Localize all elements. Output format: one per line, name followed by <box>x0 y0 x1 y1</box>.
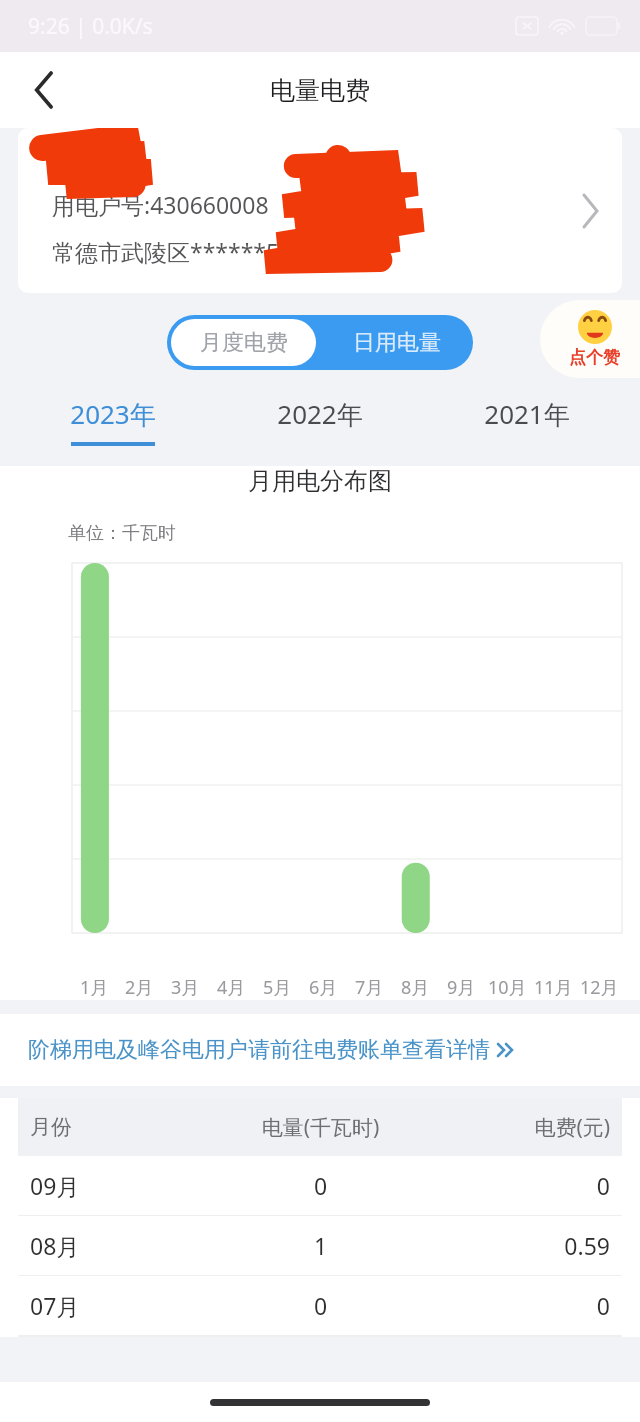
staticText: 08月 <box>30 1230 220 1261</box>
staticText: 2021年 <box>484 396 570 432</box>
staticText: 常德市武陵区******5组 <box>52 236 303 267</box>
button[interactable]: 阶梯用电及峰谷电用户请前往电费账单查看详情 <box>0 1014 640 1086</box>
staticText: 单位：千瓦时 <box>68 522 176 545</box>
staticText: 0 <box>421 1170 610 1201</box>
staticText: 12月 <box>580 975 619 1000</box>
button[interactable]: 月度电费 <box>171 319 316 366</box>
staticText: 10月 <box>488 975 527 1000</box>
button[interactable]: 点个赞 <box>540 300 640 378</box>
staticText: 1月 <box>80 975 109 1000</box>
staticText: 0.59 <box>421 1230 610 1261</box>
staticText: 8月 <box>401 975 430 1000</box>
staticText: 7月 <box>355 975 384 1000</box>
button[interactable]: 2021年 <box>423 392 630 450</box>
staticText: 电量(千瓦时) <box>220 1113 421 1142</box>
staticText: 2022年 <box>277 396 363 432</box>
staticText: 月份 <box>30 1114 220 1140</box>
staticText: 07月 <box>30 1290 220 1321</box>
staticText: 点个赞 <box>569 347 620 368</box>
button[interactable]: 2022年 <box>216 392 423 450</box>
staticText: 3月 <box>171 975 200 1000</box>
staticText: 5月 <box>263 975 292 1000</box>
staticText: 日用电量 <box>353 329 441 357</box>
button[interactable]: 09月 <box>0 1156 640 1216</box>
staticText: 0 <box>220 1170 421 1201</box>
staticText: 2月 <box>125 975 154 1000</box>
button[interactable]: 2023年 <box>10 392 216 450</box>
staticText: 阶梯用电及峰谷电用户请前往电费账单查看详情 <box>28 1036 490 1064</box>
staticText: 09月 <box>30 1170 220 1201</box>
staticText: 1 <box>220 1230 421 1261</box>
staticText: 月用电分布图 <box>248 466 392 496</box>
staticText: 4月 <box>217 975 246 1000</box>
button[interactable]: Back <box>14 59 76 121</box>
staticText: 月度电费 <box>200 329 288 357</box>
staticText: 6月 <box>309 975 338 1000</box>
staticText: 电量电费 <box>270 75 370 106</box>
staticText: 0 <box>421 1290 610 1321</box>
button[interactable]: 日用电量 <box>320 315 473 370</box>
button[interactable]: 08月 <box>0 1216 640 1276</box>
staticText: 9月 <box>447 975 476 1000</box>
staticText: 用电户号:430660008 <box>52 189 269 220</box>
staticText: 9:26 | 0.0K/s <box>28 12 153 41</box>
staticText: 0 <box>220 1290 421 1321</box>
button[interactable]: 用电户号:430660008 <box>18 128 622 293</box>
button[interactable]: 07月 <box>0 1276 640 1336</box>
staticText: 2023年 <box>70 396 156 432</box>
staticText: 电费(元) <box>421 1113 610 1142</box>
staticText: 11月 <box>534 975 573 1000</box>
